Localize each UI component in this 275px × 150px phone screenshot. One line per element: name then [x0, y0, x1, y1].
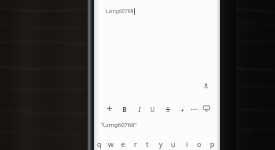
staticText: e [121, 139, 126, 149]
staticText: “Lzmg60768” [101, 121, 137, 129]
staticText: S [166, 105, 170, 113]
button[interactable]: Voice input [199, 79, 213, 93]
staticText: I [138, 105, 141, 113]
staticText: u [171, 139, 176, 149]
staticText: q [97, 139, 102, 149]
staticText: y [159, 139, 163, 149]
button[interactable]: q [93, 132, 105, 150]
button[interactable]: Add [103, 102, 116, 115]
staticText: B [122, 105, 127, 113]
button[interactable]: t [141, 132, 154, 150]
button[interactable]: Hide keyboard [200, 102, 213, 115]
button[interactable]: More options [187, 102, 200, 115]
button[interactable]: Bullet list [176, 102, 189, 115]
button[interactable]: w [105, 132, 117, 150]
staticText: t [146, 139, 149, 149]
staticText: r [134, 139, 137, 149]
staticText: o [197, 139, 202, 149]
button[interactable]: Underline [146, 102, 159, 115]
button[interactable]: y [154, 132, 167, 150]
staticText: Lzmg60768 [106, 8, 134, 15]
button[interactable]: r [129, 132, 141, 150]
staticText: U [150, 105, 155, 113]
button[interactable]: Italic [133, 102, 146, 115]
button[interactable]: u [167, 132, 180, 150]
button[interactable]: “Lzmg60768” [94, 118, 220, 132]
button[interactable]: Strikethrough [161, 102, 174, 115]
button[interactable]: o [193, 132, 206, 150]
button[interactable]: i [180, 132, 193, 150]
staticText: i [186, 139, 188, 149]
button[interactable]: Bold [118, 102, 131, 115]
button[interactable]: e [117, 132, 129, 150]
staticText: p [210, 139, 215, 149]
button[interactable]: p [206, 132, 219, 150]
staticText: w [108, 139, 114, 149]
